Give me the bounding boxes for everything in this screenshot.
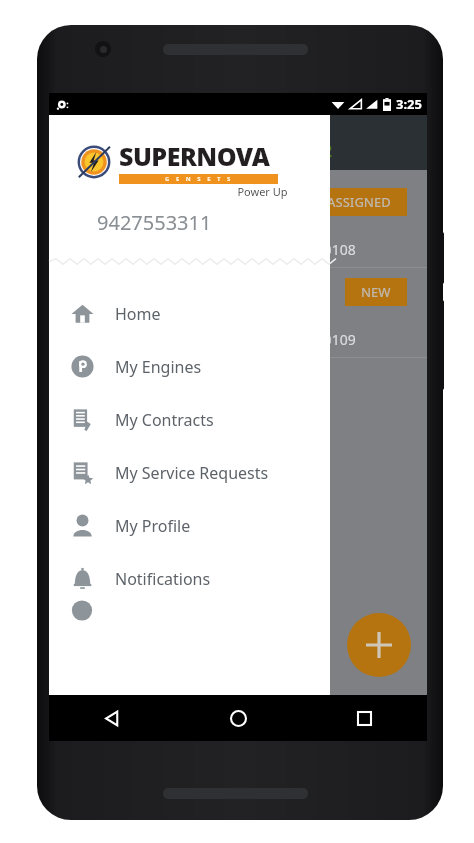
staticText: 3:25 <box>396 95 422 113</box>
staticText: Power Up <box>237 184 288 199</box>
button[interactable]: My Contracts <box>49 393 330 446</box>
button[interactable]: Back <box>49 695 175 741</box>
button[interactable]: My Profile <box>49 499 330 552</box>
staticText: SV-0000108 <box>279 240 356 259</box>
staticText: My Profile <box>115 515 191 537</box>
button[interactable]: Recents <box>301 695 427 741</box>
staticText: Home <box>115 303 161 325</box>
staticText: SV-0000109 <box>279 330 356 349</box>
button[interactable]: NEW <box>361 283 391 301</box>
button[interactable]: My Service Requests <box>49 446 330 499</box>
staticText: Notifications <box>115 568 211 590</box>
staticText: My Engines <box>115 356 202 378</box>
staticText: ASSIGNED <box>327 193 391 211</box>
staticText: 9427553311 <box>97 209 212 236</box>
staticText: My Service Requests <box>115 462 269 484</box>
staticText: NEW <box>361 283 391 301</box>
staticText: G E N S E T S <box>165 175 233 183</box>
button[interactable]: My Engines <box>49 340 330 393</box>
button[interactable]: Home <box>175 695 301 741</box>
button[interactable]: Add <box>347 613 411 677</box>
staticText: My Contracts <box>115 409 214 431</box>
button[interactable]: Notifications <box>49 552 330 605</box>
button[interactable]: Home <box>49 287 330 340</box>
staticText: SUPERNOVA <box>119 139 270 173</box>
button[interactable]: ASSIGNED <box>327 193 391 211</box>
staticText: 2 <box>323 140 333 162</box>
